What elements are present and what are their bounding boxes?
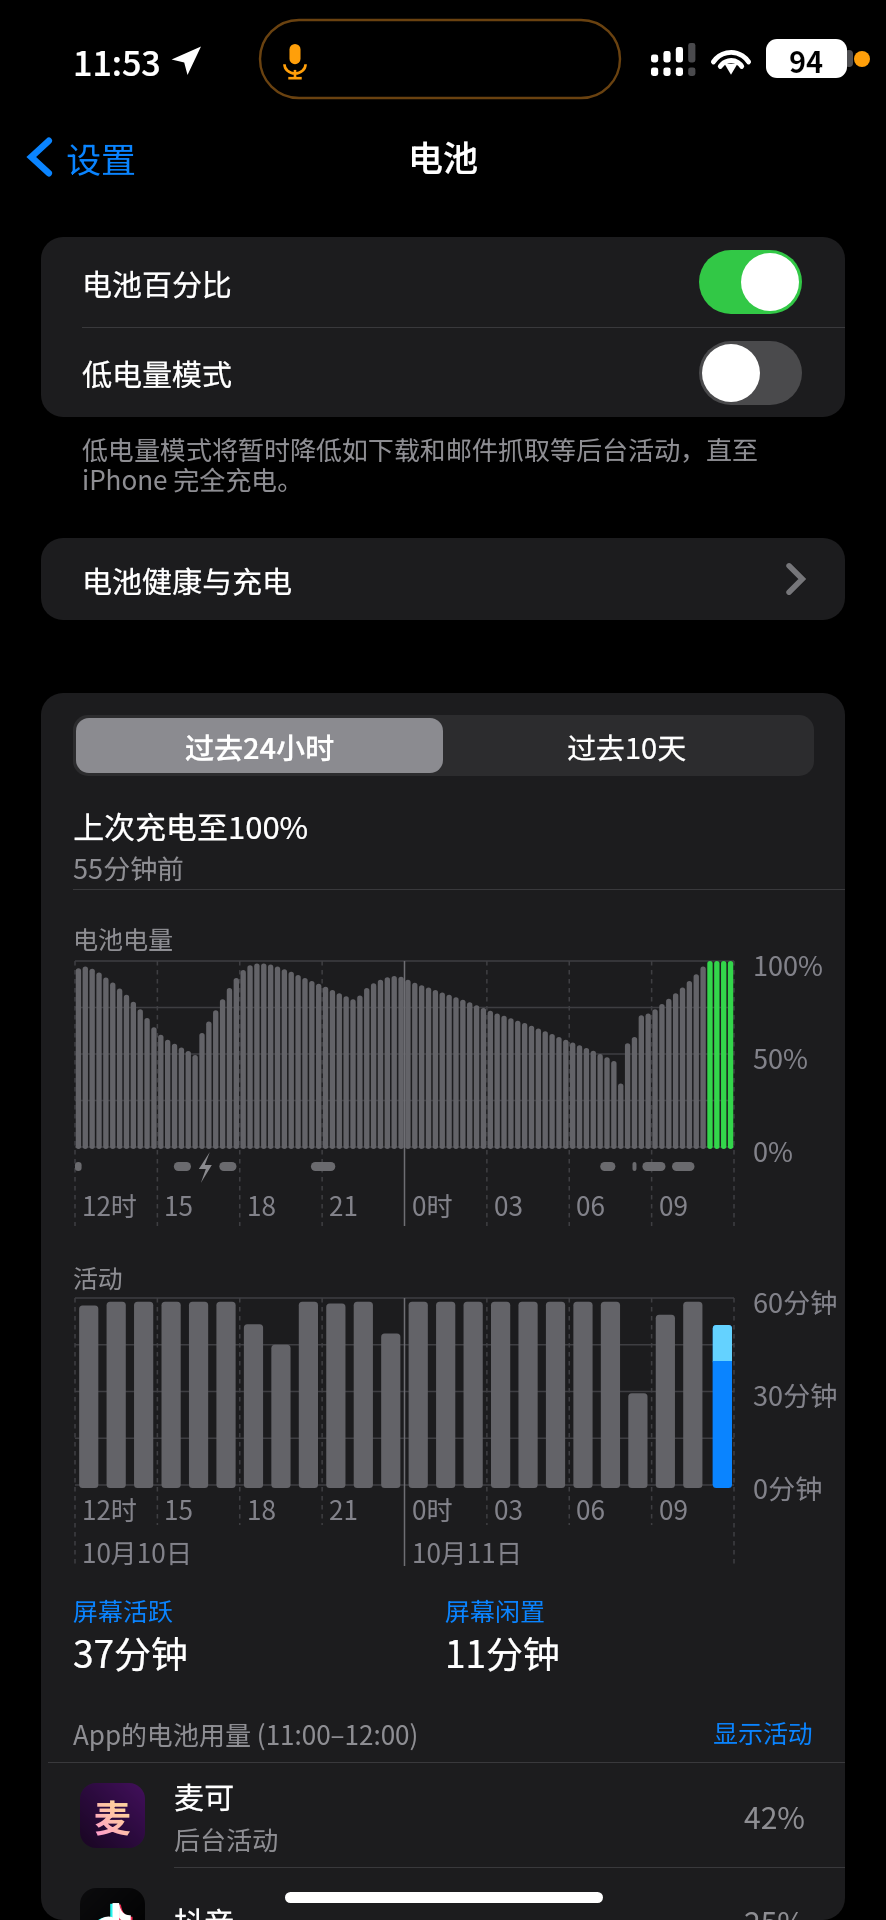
staticText: 09: [659, 1490, 688, 1528]
staticText: 10月10日: [82, 1533, 192, 1571]
staticText: 上次充电至100%: [73, 803, 309, 848]
button[interactable]: 过去10天: [443, 718, 811, 773]
button[interactable]: 设置: [24, 129, 142, 185]
staticText: 过去10天: [567, 725, 687, 767]
staticText: 电池电量: [73, 920, 174, 956]
staticText: 06: [576, 1490, 605, 1528]
staticText: 25%: [744, 1899, 805, 1920]
staticText: 50%: [753, 1038, 808, 1077]
staticText: 电池: [408, 130, 479, 181]
staticText: 电池百分比: [82, 261, 232, 304]
button[interactable]: 低电量模式: [41, 328, 845, 417]
staticText: 18: [247, 1490, 276, 1528]
staticText: 12时: [82, 1490, 137, 1528]
staticText: 18: [247, 1186, 276, 1224]
staticText: 11分钟: [445, 1625, 561, 1679]
staticText: 低电量模式: [82, 351, 232, 394]
staticText: App的电池用量 (11:00–12:00): [73, 1715, 419, 1753]
staticText: iPhone 完全充电。: [82, 460, 304, 498]
staticText: 0%: [753, 1131, 793, 1170]
staticText: 42%: [744, 1794, 805, 1837]
button[interactable]: 显示活动: [709, 1710, 818, 1754]
button[interactable]: 电池百分比: [699, 250, 802, 314]
staticText: 94: [789, 39, 824, 78]
button[interactable]: 麦: [41, 1763, 845, 1868]
staticText: 0时: [412, 1490, 453, 1528]
button[interactable]: 过去24小时: [76, 718, 443, 773]
staticText: 过去24小时: [185, 725, 335, 767]
button[interactable]: 电池百分比: [41, 237, 845, 327]
staticText: 30分钟: [753, 1375, 837, 1414]
button[interactable]: 电池健康与充电: [41, 538, 845, 620]
staticText: 100%: [753, 945, 823, 984]
other: Wi-Fi: [710, 42, 752, 74]
staticText: 麦: [94, 1789, 131, 1843]
staticText: 屏幕活跃: [73, 1592, 174, 1628]
staticText: 麦可: [174, 1774, 234, 1817]
staticText: 10月11日: [412, 1533, 522, 1571]
staticText: 设置: [66, 132, 137, 183]
staticText: 抖音: [174, 1899, 234, 1920]
staticText: 06: [576, 1186, 605, 1224]
staticText: 低电量模式将暂时降低如下载和邮件抓取等后台活动，直至: [82, 430, 759, 468]
staticText: 电池健康与充电: [82, 558, 292, 601]
button[interactable]: 抖音: [41, 1868, 845, 1920]
staticText: 60分钟: [753, 1282, 837, 1321]
staticText: 0时: [412, 1186, 453, 1224]
staticText: 03: [494, 1186, 523, 1224]
other: Cellular signal: [651, 43, 696, 76]
staticText: 21: [329, 1186, 358, 1224]
other: Voice input: [283, 44, 307, 80]
staticText: 21: [329, 1490, 358, 1528]
staticText: 12时: [82, 1186, 137, 1224]
staticText: 09: [659, 1186, 688, 1224]
staticText: 0分钟: [753, 1468, 822, 1507]
staticText: 后台活动: [174, 1820, 279, 1858]
button[interactable]: 低电量模式: [699, 341, 802, 405]
staticText: 37分钟: [73, 1625, 189, 1679]
staticText: 55分钟前: [73, 848, 184, 887]
staticText: 15: [164, 1186, 193, 1224]
staticText: 显示活动: [713, 1714, 814, 1750]
staticText: 屏幕闲置: [445, 1592, 546, 1628]
staticText: 活动: [73, 1259, 124, 1295]
staticText: 11:53: [73, 37, 161, 86]
staticText: 15: [164, 1490, 193, 1528]
staticText: 03: [494, 1490, 523, 1528]
